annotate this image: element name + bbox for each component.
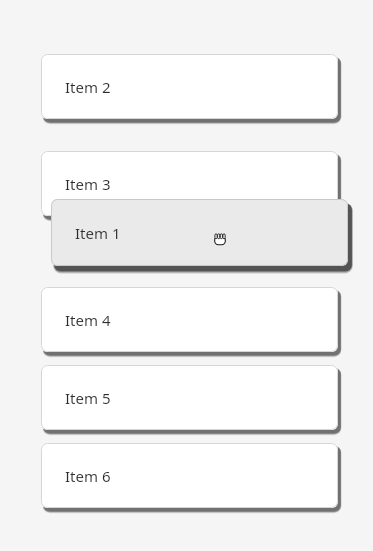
button[interactable]: Item 2	[41, 54, 338, 119]
button[interactable]: Item 6	[41, 443, 338, 508]
staticText: Item 2	[65, 77, 111, 97]
staticText: Item 3	[65, 174, 111, 194]
button[interactable]: Item 5	[41, 365, 338, 430]
other: Drag handle cursor	[213, 231, 227, 247]
button[interactable]: Item 4	[41, 287, 338, 352]
staticText: Item 1	[75, 223, 121, 243]
staticText: Item 6	[65, 466, 111, 486]
staticText: Item 5	[65, 388, 111, 408]
button[interactable]: Item 1	[51, 199, 348, 266]
staticText: Item 4	[65, 310, 111, 330]
button[interactable]: Item 3	[41, 151, 338, 216]
